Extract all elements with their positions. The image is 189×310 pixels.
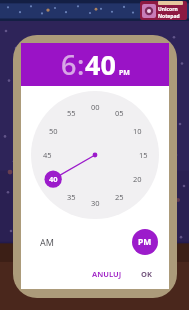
- button[interactable]: 10: [128, 125, 146, 137]
- button[interactable]: Advertisement banner: [0, 0, 189, 21]
- staticText: Notepad: [158, 13, 180, 20]
- staticText: 00: [91, 102, 100, 112]
- button[interactable]: 45: [38, 149, 56, 161]
- staticText: 05: [115, 108, 124, 118]
- button[interactable]: 40: [44, 173, 62, 185]
- staticText: 25: [115, 192, 124, 202]
- staticText: OK: [141, 269, 152, 279]
- staticText: AM: [40, 236, 54, 248]
- staticText: 50: [49, 126, 58, 136]
- button[interactable]: AM: [33, 228, 61, 256]
- button[interactable]: 25: [110, 191, 128, 203]
- staticText: 40: [85, 46, 116, 83]
- button[interactable]: 30: [86, 197, 104, 209]
- button[interactable]: 05: [110, 107, 128, 119]
- staticText: 45: [43, 150, 52, 160]
- staticText: 40: [49, 174, 58, 184]
- button[interactable]: 35: [62, 191, 80, 203]
- button[interactable]: Install Unicorn Notepad: [140, 1, 187, 20]
- staticText: PM: [119, 68, 130, 78]
- staticText: 15: [139, 150, 148, 160]
- staticText: Unicorn: [158, 6, 178, 13]
- staticText: 6: [61, 46, 77, 83]
- staticText: 10: [133, 126, 142, 136]
- button[interactable]: 50: [44, 125, 62, 137]
- button[interactable]: 6: [21, 43, 169, 86]
- staticText: 20: [133, 174, 142, 184]
- button[interactable]: 55: [62, 107, 80, 119]
- button[interactable]: OK: [136, 265, 157, 283]
- staticText: 30: [91, 198, 100, 208]
- staticText: :: [77, 46, 85, 83]
- button[interactable]: PM: [132, 229, 158, 255]
- staticText: PM: [138, 236, 152, 248]
- staticText: ANULUJ: [92, 269, 122, 279]
- button[interactable]: ANULUJ: [87, 265, 127, 283]
- staticText: 55: [67, 108, 76, 118]
- button[interactable]: 20: [128, 173, 146, 185]
- staticText: 35: [67, 192, 76, 202]
- button[interactable]: 00: [86, 101, 104, 113]
- button[interactable]: 15: [134, 149, 152, 161]
